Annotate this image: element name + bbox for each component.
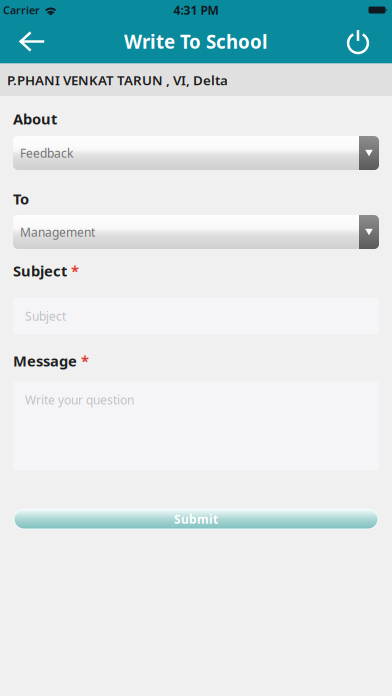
staticText: Subject (13, 261, 67, 280)
staticText: * (71, 261, 79, 280)
staticText: Management (20, 224, 95, 240)
staticText: Message (13, 351, 77, 370)
staticText: Write your question (25, 392, 134, 408)
staticText: * (81, 351, 89, 370)
staticText: Submit (174, 511, 218, 527)
staticText: 4:31 PM (173, 2, 218, 18)
staticText: Feedback (20, 145, 73, 161)
button[interactable]: Submit (14, 509, 378, 529)
staticText: About (13, 109, 57, 128)
staticText: To (13, 189, 29, 208)
staticText: Carrier (3, 3, 40, 17)
button[interactable]: Management (13, 215, 379, 249)
staticText: P.PHANI VENKAT TARUN , VI, Delta (7, 71, 228, 89)
button[interactable]: Back (0, 20, 56, 63)
button[interactable]: Log out (336, 20, 392, 62)
staticText: Subject (25, 308, 66, 324)
button[interactable]: Feedback (13, 136, 379, 170)
staticText: Write To School (124, 29, 268, 54)
